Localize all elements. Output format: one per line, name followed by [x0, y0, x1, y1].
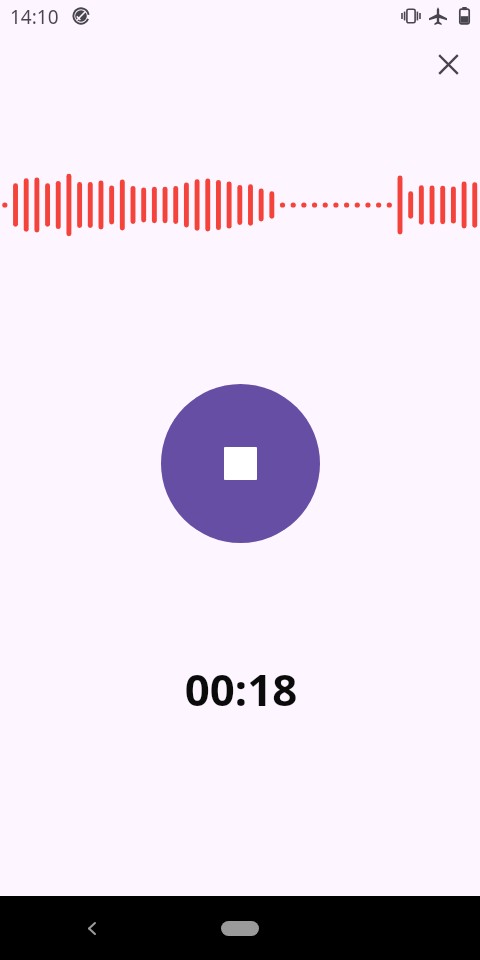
staticText: 14:10 [10, 4, 59, 30]
button[interactable]: Stop recording [161, 384, 320, 543]
button[interactable]: Home [221, 921, 259, 936]
button[interactable]: Close [424, 40, 472, 88]
staticText: 00:18 [1, 659, 480, 719]
button[interactable]: Back [68, 903, 116, 951]
